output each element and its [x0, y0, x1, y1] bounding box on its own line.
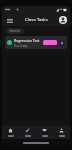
button[interactable]: Open navigation menu — [5, 15, 15, 25]
staticText: Starred — [9, 29, 21, 33]
button[interactable]: Regression Test — [5, 36, 67, 49]
button[interactable] — [2, 126, 19, 139]
button[interactable]: Highlighted label — [43, 40, 57, 45]
button[interactable]: Open task details — [59, 40, 65, 46]
button[interactable] — [53, 126, 70, 139]
staticText: Close Tasks — [25, 17, 48, 23]
staticText: Regression Test — [14, 38, 40, 43]
button[interactable]: Starred — [6, 28, 24, 34]
staticText: Due today — [14, 44, 28, 48]
button[interactable] — [19, 126, 36, 139]
button[interactable]: Account — [59, 16, 67, 24]
button[interactable] — [36, 126, 53, 139]
